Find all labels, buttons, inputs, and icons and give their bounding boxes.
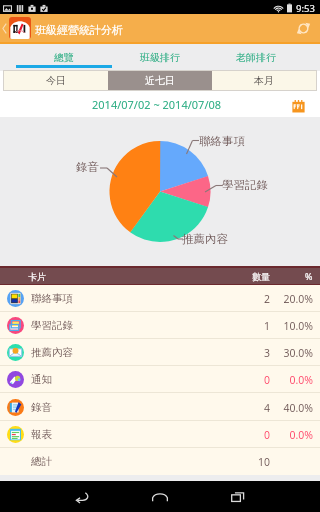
staticText: 3 [0, 346, 270, 360]
button[interactable]: Back [59, 481, 105, 512]
button[interactable]: Back [0, 14, 9, 42]
staticText: 4 [0, 401, 270, 415]
button[interactable]: Pick date range [289, 97, 307, 115]
staticText: 錄音 [76, 160, 99, 174]
button[interactable]: 老師排行 [208, 44, 304, 71]
button[interactable]: 推薦內容 [0, 339, 320, 366]
staticText: 總計 [31, 455, 52, 468]
staticText: 聯絡事項 [199, 134, 245, 148]
staticText: 推薦內容 [31, 346, 73, 359]
staticText: 班級經營統計分析 [35, 23, 123, 37]
staticText: 0 [0, 428, 270, 442]
staticText: 9:53 [296, 2, 315, 14]
button[interactable]: 總覽 [16, 44, 112, 71]
staticText: 班級排行 [140, 51, 180, 64]
staticText: 學習記錄 [222, 178, 268, 192]
staticText: 30.0% [0, 346, 313, 360]
button[interactable]: 總計 [0, 448, 320, 475]
staticText: 今日 [46, 74, 66, 87]
staticText: 總覽 [54, 51, 74, 64]
button[interactable]: 通知 [0, 366, 320, 393]
staticText: 推薦內容 [182, 232, 228, 246]
staticText: 0 [0, 373, 270, 387]
staticText: 聯絡事項 [31, 292, 73, 305]
staticText: 2 [0, 292, 270, 306]
button[interactable]: Recent apps [215, 481, 261, 512]
button[interactable]: 報表 [0, 421, 320, 448]
button[interactable]: 學習記錄 [0, 312, 320, 339]
button[interactable]: Refresh [291, 14, 315, 42]
staticText: 數量 [252, 271, 270, 282]
staticText: 報表 [31, 428, 52, 441]
button[interactable]: 近七日 [108, 71, 212, 90]
staticText: 40.0% [0, 401, 313, 415]
button[interactable]: 今日 [4, 71, 108, 90]
staticText: 1 [0, 319, 270, 333]
button[interactable]: 班級排行 [112, 44, 208, 71]
staticText: 本月 [254, 74, 274, 87]
button[interactable]: 本月 [212, 71, 316, 90]
staticText: 20.0% [0, 292, 313, 306]
staticText: 0.0% [0, 428, 313, 442]
button[interactable]: 錄音 [0, 394, 320, 421]
staticText: 老師排行 [236, 51, 276, 64]
staticText: 學習記錄 [31, 319, 73, 332]
staticText: 通知 [31, 373, 52, 386]
staticText: 10.0% [0, 319, 313, 333]
button[interactable]: App icon [9, 17, 31, 39]
staticText: 0.0% [0, 373, 313, 387]
button[interactable]: 聯絡事項 [0, 285, 320, 312]
staticText: 錄音 [31, 401, 52, 414]
staticText: 卡片 [28, 271, 46, 282]
button[interactable]: Home [137, 481, 183, 512]
staticText: 近七日 [145, 74, 175, 87]
staticText: % [305, 270, 313, 282]
staticText: 10 [0, 455, 270, 469]
staticText: 2014/07/02 ~ 2014/07/08 [92, 97, 222, 112]
